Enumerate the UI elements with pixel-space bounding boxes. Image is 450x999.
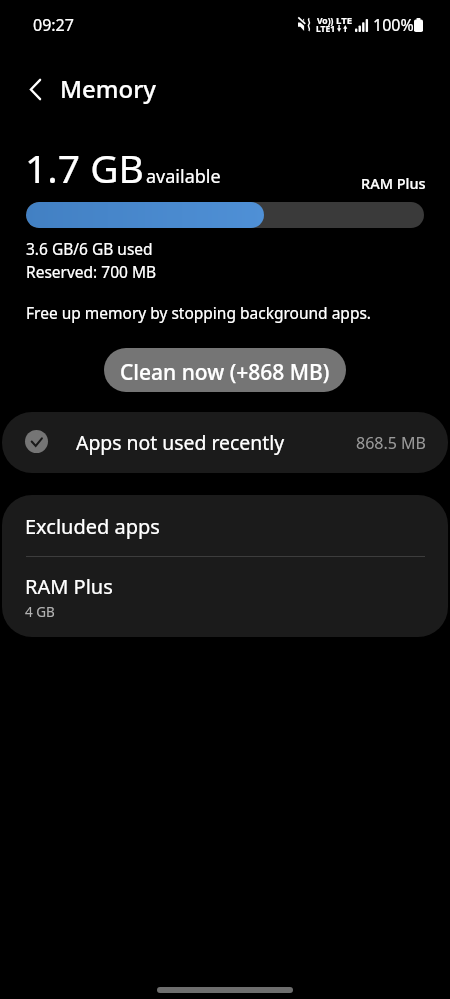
button[interactable]: RAM Plus [2,557,448,637]
other: Ringer muted, vibrate [298,18,311,31]
staticText: Excluded apps [25,513,160,540]
staticText: 4 GB [25,603,55,621]
staticText: Memory [60,72,157,105]
staticText: Apps not used recently [76,429,285,455]
other: Battery full [414,18,423,32]
other: Signal strength [355,19,368,32]
staticText: available [146,164,221,189]
button[interactable]: Apps not used recently [2,412,448,473]
staticText: 09:27 [33,14,74,36]
staticText: 1.7 GB [25,141,144,194]
other: Mobile data activity [336,25,350,32]
staticText: LTE [336,14,353,27]
button[interactable]: Clean now (+868 MB) [104,348,346,392]
staticText: Clean now (+868 MB) [120,358,330,387]
staticText: 100% [373,14,414,36]
staticText: 868.5 MB [356,432,426,454]
staticText: Vo)) [317,15,334,27]
staticText: RAM Plus [361,173,426,193]
staticText: LTE1 [316,23,336,35]
staticText: RAM Plus [25,573,113,600]
staticText: Reserved: 700 MB [26,261,157,282]
staticText: 3.6 GB/6 GB used [26,238,153,259]
button[interactable]: Excluded apps [2,495,448,556]
staticText: Free up memory by stopping background ap… [26,302,372,323]
button[interactable]: Navigate up [17,71,53,107]
